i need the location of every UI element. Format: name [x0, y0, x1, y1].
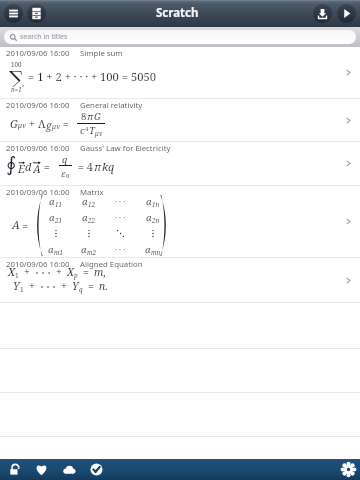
staticText: 2n	[152, 216, 160, 224]
staticText: X	[67, 265, 74, 279]
staticText: n.	[99, 279, 108, 293]
button[interactable]: 2010/09/06 16:00	[0, 258, 360, 302]
staticText: 1	[20, 285, 24, 294]
staticText: m2	[87, 248, 97, 256]
staticText: 21	[55, 216, 62, 224]
staticText: = 4	[75, 159, 94, 174]
staticText: Simple sum	[80, 48, 123, 59]
staticText: Y	[72, 279, 79, 293]
staticText: G	[10, 116, 18, 131]
button[interactable]: Done	[88, 459, 104, 480]
staticText: A	[33, 161, 41, 174]
staticText: g	[46, 118, 52, 132]
staticText: mn	[151, 248, 161, 256]
staticText: +	[61, 279, 67, 293]
staticText: X	[8, 265, 15, 279]
staticText: A	[12, 217, 20, 232]
staticText: a	[146, 211, 152, 224]
staticText: μν	[52, 122, 60, 132]
staticText: = 1 + 2 + · · · + 100 = 5050	[28, 69, 156, 84]
staticText: π	[94, 159, 102, 174]
button[interactable]: Menu	[4, 4, 23, 23]
staticText: +	[26, 116, 38, 131]
staticText: 100	[11, 60, 22, 68]
staticText: 2010/09/06 16:00	[6, 259, 70, 270]
staticText: a	[145, 243, 151, 256]
staticText: +	[24, 265, 30, 279]
staticText: 2010/09/06 16:00	[6, 48, 70, 59]
staticText: ∮	[6, 152, 17, 175]
button[interactable]: Cloud sync	[61, 459, 77, 480]
staticText: q	[62, 153, 68, 166]
staticText: E	[18, 161, 25, 174]
staticText: a	[49, 211, 55, 224]
staticText: π	[87, 110, 94, 123]
staticText: =	[22, 218, 29, 233]
staticText: 0	[66, 172, 70, 180]
staticText: 2010/09/06 16:00	[6, 100, 70, 111]
button[interactable]: 2010/09/06 16:00	[0, 99, 360, 141]
staticText: search in titles	[20, 32, 68, 42]
staticText: d	[25, 159, 32, 174]
staticText: 2010/09/06 16:00	[6, 187, 70, 198]
staticText: 12	[88, 200, 95, 208]
staticText: Aligned Equation	[80, 259, 143, 270]
staticText: 8	[81, 110, 87, 123]
button[interactable]: Play	[337, 4, 356, 23]
staticText: μν	[18, 121, 26, 131]
button[interactable]: 2010/09/06 16:00	[0, 47, 360, 98]
staticText: 2010/09/06 16:00	[6, 143, 70, 154]
staticText: +	[56, 265, 62, 279]
staticText: · · ·	[115, 212, 126, 223]
staticText: T	[89, 124, 95, 137]
staticText: Scratch	[156, 5, 199, 21]
staticText: m,	[94, 265, 107, 279]
staticText: 1n	[152, 200, 160, 208]
staticText: Matrix	[80, 187, 104, 198]
staticText: a	[146, 195, 152, 208]
staticText: G	[94, 110, 101, 123]
button[interactable]: Lock	[6, 459, 22, 480]
staticText: a	[81, 243, 87, 256]
staticText: kq	[102, 159, 115, 174]
staticText: a	[82, 195, 88, 208]
staticText: q	[79, 285, 83, 294]
staticText: 4	[85, 125, 89, 133]
staticText: ε	[61, 167, 66, 179]
staticText: 11	[55, 200, 62, 208]
staticText: Gauss' Law for Electricity	[80, 143, 171, 154]
button[interactable]: 2010/09/06 16:00	[0, 142, 360, 185]
staticText: 22	[88, 216, 95, 224]
staticText: n=1	[11, 85, 22, 93]
staticText: a	[82, 211, 88, 224]
staticText: 1	[15, 271, 19, 280]
button[interactable]: Favorites	[33, 459, 49, 480]
staticText: m1	[54, 248, 64, 256]
staticText: =	[41, 159, 53, 174]
staticText: =	[88, 279, 94, 293]
staticText: · · ·	[115, 244, 126, 255]
button[interactable]: Download	[313, 4, 332, 23]
staticText: =	[83, 265, 89, 279]
staticText: +	[29, 279, 35, 293]
staticText: · · ·	[115, 196, 126, 207]
button[interactable]: 2010/09/06 16:00	[0, 186, 360, 257]
button[interactable]: search in titles	[4, 30, 356, 44]
staticText: Λ	[38, 116, 46, 131]
staticText: =	[60, 116, 72, 131]
staticText: a	[49, 195, 55, 208]
staticText: μν	[95, 129, 103, 138]
staticText: Y	[13, 279, 20, 293]
staticText: a	[48, 243, 54, 256]
button[interactable]: Notebooks	[27, 4, 46, 23]
button[interactable]: Settings	[340, 459, 356, 480]
staticText: p	[74, 271, 78, 280]
staticText: General relativity	[80, 100, 143, 111]
staticText: c	[80, 124, 85, 137]
staticText: ∑	[9, 67, 24, 87]
